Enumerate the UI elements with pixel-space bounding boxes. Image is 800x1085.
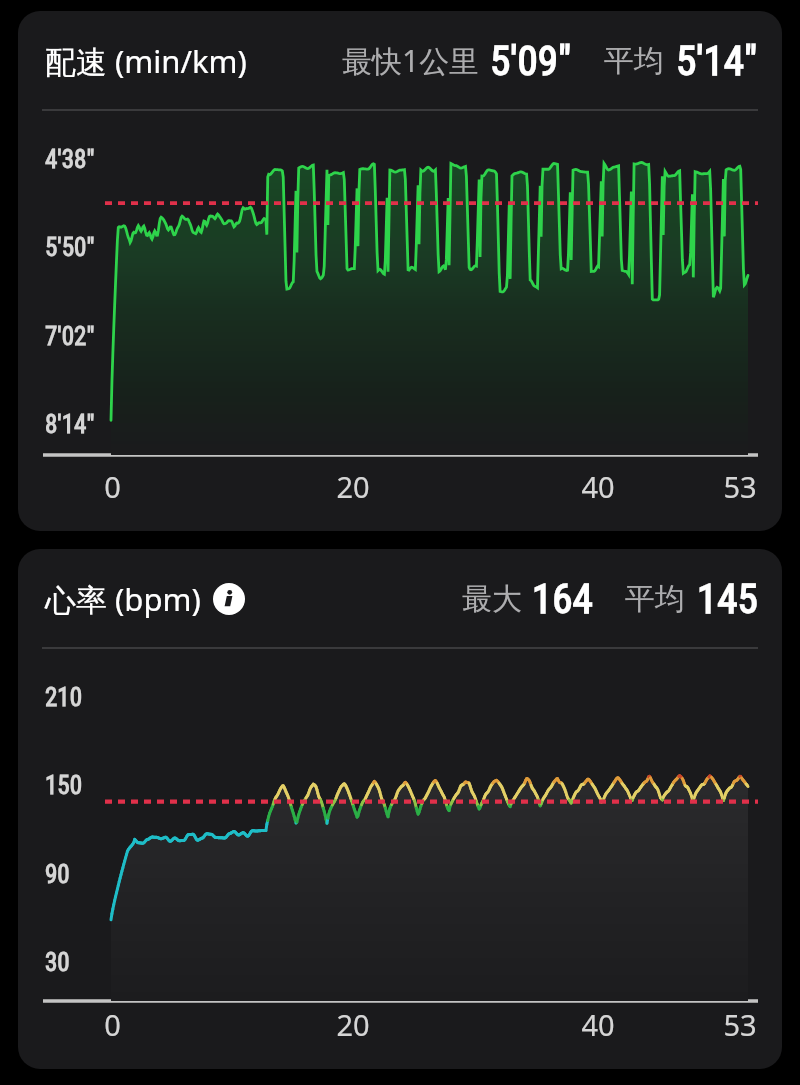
staticText: 平均 (625, 580, 685, 618)
staticText: 4'38" (45, 145, 95, 174)
staticText: 40 (581, 1005, 615, 1044)
staticText: 90 (45, 860, 70, 889)
staticText: 5'09" (490, 37, 572, 85)
staticText: 20 (336, 1005, 370, 1044)
staticText: 150 (45, 771, 83, 800)
staticText: 210 (45, 683, 83, 712)
staticText: 配速 (min/km) (45, 40, 247, 82)
staticText: 心率 (bpm) (45, 578, 201, 620)
staticText: 最快1公里 (342, 40, 480, 81)
staticText: 40 (581, 467, 615, 506)
staticText: 平均 (604, 42, 664, 80)
staticText: 53 (723, 1005, 757, 1044)
button[interactable]: 配速 (min/km) (18, 11, 782, 531)
staticText: 8'14" (45, 410, 95, 439)
staticText: 20 (336, 467, 370, 506)
staticText: 最大 (462, 580, 522, 618)
staticText: 30 (45, 948, 70, 977)
staticText: 0 (104, 467, 121, 506)
staticText: 53 (723, 467, 757, 506)
button[interactable]: 心率 (bpm) (18, 549, 782, 1069)
staticText: 145 (697, 575, 758, 623)
staticText: 5'50" (45, 233, 95, 262)
staticText: 0 (104, 1005, 121, 1044)
staticText: 5'14" (676, 37, 758, 85)
staticText: 7'02" (45, 322, 95, 351)
staticText: 164 (532, 575, 593, 623)
button[interactable]: Info (213, 583, 245, 615)
